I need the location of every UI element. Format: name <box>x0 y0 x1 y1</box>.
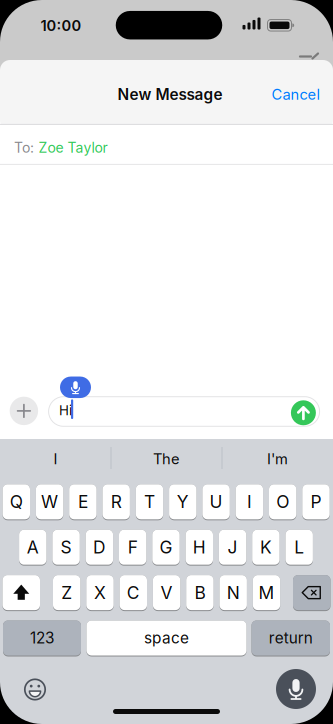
staticText: H <box>193 537 206 558</box>
button[interactable]: M <box>253 575 280 611</box>
staticText: B <box>194 582 205 603</box>
button[interactable]: I <box>3 442 108 475</box>
staticText: A <box>27 537 39 558</box>
staticText: I'm <box>267 450 288 468</box>
staticText: 123 <box>30 629 54 647</box>
staticText: Y <box>177 491 189 512</box>
button[interactable]: Dictate <box>276 669 316 709</box>
staticText: Zoe Taylor <box>38 139 107 156</box>
button[interactable]: L <box>285 530 313 566</box>
button[interactable]: I <box>236 484 263 520</box>
button[interactable]: E <box>69 484 97 520</box>
staticText: I <box>247 491 252 512</box>
button[interactable]: T <box>136 484 163 520</box>
staticText: I <box>53 450 57 468</box>
button[interactable]: W <box>36 484 63 520</box>
button[interactable]: A <box>19 530 46 566</box>
button[interactable]: R <box>102 484 130 520</box>
staticText: Z <box>61 582 72 603</box>
staticText: R <box>111 491 122 512</box>
staticText: T <box>144 491 155 512</box>
button[interactable]: return <box>251 620 330 656</box>
button[interactable]: J <box>219 530 246 566</box>
button[interactable]: The <box>114 442 219 475</box>
staticText: F <box>128 537 138 558</box>
staticText: J <box>228 537 238 558</box>
staticText: W <box>41 491 58 512</box>
button[interactable]: Cancel <box>266 79 326 109</box>
staticText: Cancel <box>271 85 320 103</box>
button[interactable]: Dictation <box>60 377 91 398</box>
button[interactable]: S <box>52 530 80 566</box>
button[interactable]: Send <box>291 400 316 425</box>
staticText: space <box>144 629 189 647</box>
staticText: V <box>161 582 173 603</box>
staticText: P <box>310 491 321 512</box>
staticText: Q <box>10 491 23 512</box>
staticText: S <box>61 537 72 558</box>
staticText: D <box>93 537 106 558</box>
staticText: G <box>159 537 172 558</box>
button[interactable]: O <box>269 484 296 520</box>
staticText: K <box>260 537 272 558</box>
staticText: N <box>227 582 240 603</box>
button[interactable]: D <box>86 530 113 566</box>
staticText: O <box>276 491 289 512</box>
button[interactable]: F <box>119 530 146 566</box>
button[interactable]: K <box>252 530 280 566</box>
staticText: The <box>153 450 180 468</box>
button[interactable]: Add attachment <box>10 397 38 425</box>
button[interactable]: P <box>302 484 330 520</box>
staticText: 10:00 <box>40 17 81 34</box>
staticText: To: <box>14 139 34 156</box>
button[interactable]: X <box>86 575 114 611</box>
button[interactable]: Shift <box>2 575 40 611</box>
button[interactable]: Q <box>3 484 30 520</box>
button[interactable]: Emoji <box>21 675 49 703</box>
button[interactable]: U <box>202 484 230 520</box>
button[interactable]: Z <box>53 575 80 611</box>
button[interactable]: N <box>219 575 247 611</box>
staticText: return <box>269 629 313 647</box>
staticText: X <box>94 582 106 603</box>
staticText: E <box>78 491 88 512</box>
staticText: New Message <box>117 85 222 104</box>
button[interactable]: Y <box>169 484 196 520</box>
staticText: U <box>210 491 223 512</box>
button[interactable]: I'm <box>225 442 330 475</box>
button[interactable]: G <box>152 530 180 566</box>
button[interactable]: V <box>153 575 180 611</box>
staticText: Hi <box>59 402 72 418</box>
button[interactable]: 123 <box>3 620 81 656</box>
staticText: C <box>127 582 140 603</box>
button[interactable]: space <box>86 620 246 656</box>
staticText: L <box>294 537 304 558</box>
staticText: M <box>258 582 274 603</box>
button[interactable]: Delete <box>293 575 330 611</box>
button[interactable]: C <box>120 575 147 611</box>
button[interactable]: H <box>186 530 213 566</box>
button[interactable]: B <box>186 575 214 611</box>
